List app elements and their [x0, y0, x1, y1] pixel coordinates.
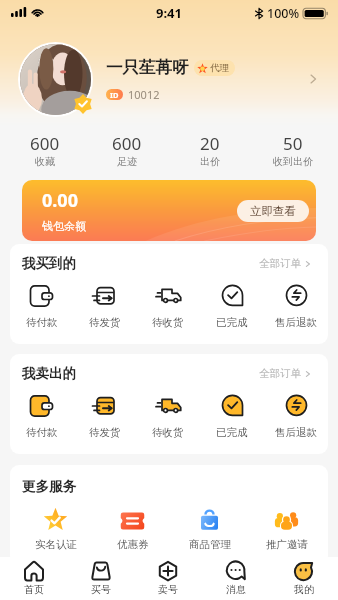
button[interactable]: 首页	[0, 557, 67, 600]
staticText: 待付款	[26, 426, 58, 439]
staticText: 一只苼苒呀	[106, 57, 189, 78]
staticText: 收藏	[35, 155, 55, 168]
button[interactable]: 买号	[67, 557, 134, 600]
button[interactable]: 消息	[202, 557, 270, 600]
staticText: 600	[112, 132, 142, 155]
staticText: 全部订单	[259, 257, 301, 270]
button[interactable]: 600	[4, 132, 86, 168]
button[interactable]: 50	[251, 132, 334, 168]
button[interactable]: 售后退款	[264, 395, 328, 439]
staticText: 更多服务	[22, 478, 76, 495]
staticText: 600	[30, 132, 60, 155]
button[interactable]: 待收货	[136, 395, 200, 439]
staticText: 消息	[226, 583, 246, 596]
button[interactable]: 代理	[197, 62, 229, 74]
staticText: 优惠券	[117, 538, 149, 551]
staticText: 收到出价	[273, 155, 313, 168]
staticText: 0.00	[42, 188, 78, 213]
button[interactable]: 待付款	[10, 395, 73, 439]
staticText: 代理	[210, 62, 229, 74]
button[interactable]: 待收货	[136, 285, 200, 329]
staticText: 售后退款	[275, 426, 317, 439]
staticText: 待收货	[152, 426, 184, 439]
button[interactable]: 全部订单	[259, 367, 312, 380]
button[interactable]: 600	[86, 132, 168, 168]
staticText: 全部订单	[259, 367, 301, 380]
button[interactable]: 商品管理	[171, 508, 248, 551]
button[interactable]: 全部订单	[259, 257, 312, 270]
button[interactable]: Avatar	[20, 44, 91, 115]
button[interactable]: 0.00	[22, 180, 316, 241]
button[interactable]: 卖号	[134, 557, 202, 600]
staticText: 卖号	[158, 583, 178, 596]
staticText: 商品管理	[189, 538, 231, 551]
button[interactable]: 已完成	[200, 285, 264, 329]
staticText: 已完成	[216, 316, 248, 329]
button[interactable]: 售后退款	[264, 285, 328, 329]
staticText: 买号	[91, 583, 111, 596]
staticText: 我卖出的	[22, 365, 76, 382]
staticText: 20	[200, 132, 220, 155]
button[interactable]: 优惠券	[94, 508, 171, 551]
button[interactable]: Profile details	[304, 70, 322, 88]
staticText: 待收货	[152, 316, 184, 329]
staticText: ID	[110, 90, 119, 100]
staticText: 10012	[128, 87, 160, 102]
button[interactable]: 待发货	[73, 285, 136, 329]
button[interactable]: 实名认证	[17, 508, 94, 551]
staticText: 出价	[200, 155, 220, 168]
button[interactable]: 已完成	[200, 395, 264, 439]
staticText: 我的	[294, 583, 314, 596]
staticText: 100%	[267, 5, 300, 22]
staticText: 钱包余额	[42, 219, 86, 233]
button[interactable]: 我的	[270, 557, 338, 600]
button[interactable]: 推广邀请	[248, 508, 325, 551]
staticText: 推广邀请	[266, 538, 308, 551]
staticText: 待发货	[89, 316, 121, 329]
button[interactable]: 待发货	[73, 395, 136, 439]
staticText: 足迹	[117, 155, 137, 168]
staticText: 售后退款	[275, 316, 317, 329]
button[interactable]: 待付款	[10, 285, 73, 329]
staticText: 立即查看	[250, 204, 296, 218]
staticText: 9:41	[156, 4, 182, 22]
staticText: 我买到的	[22, 255, 76, 272]
staticText: 已完成	[216, 426, 248, 439]
button[interactable]: 20	[168, 132, 251, 168]
button[interactable]: 立即查看	[237, 200, 309, 222]
staticText: 待发货	[89, 426, 121, 439]
staticText: 首页	[24, 583, 44, 596]
staticText: 实名认证	[35, 538, 77, 551]
staticText: 50	[283, 132, 303, 155]
staticText: 待付款	[26, 316, 58, 329]
